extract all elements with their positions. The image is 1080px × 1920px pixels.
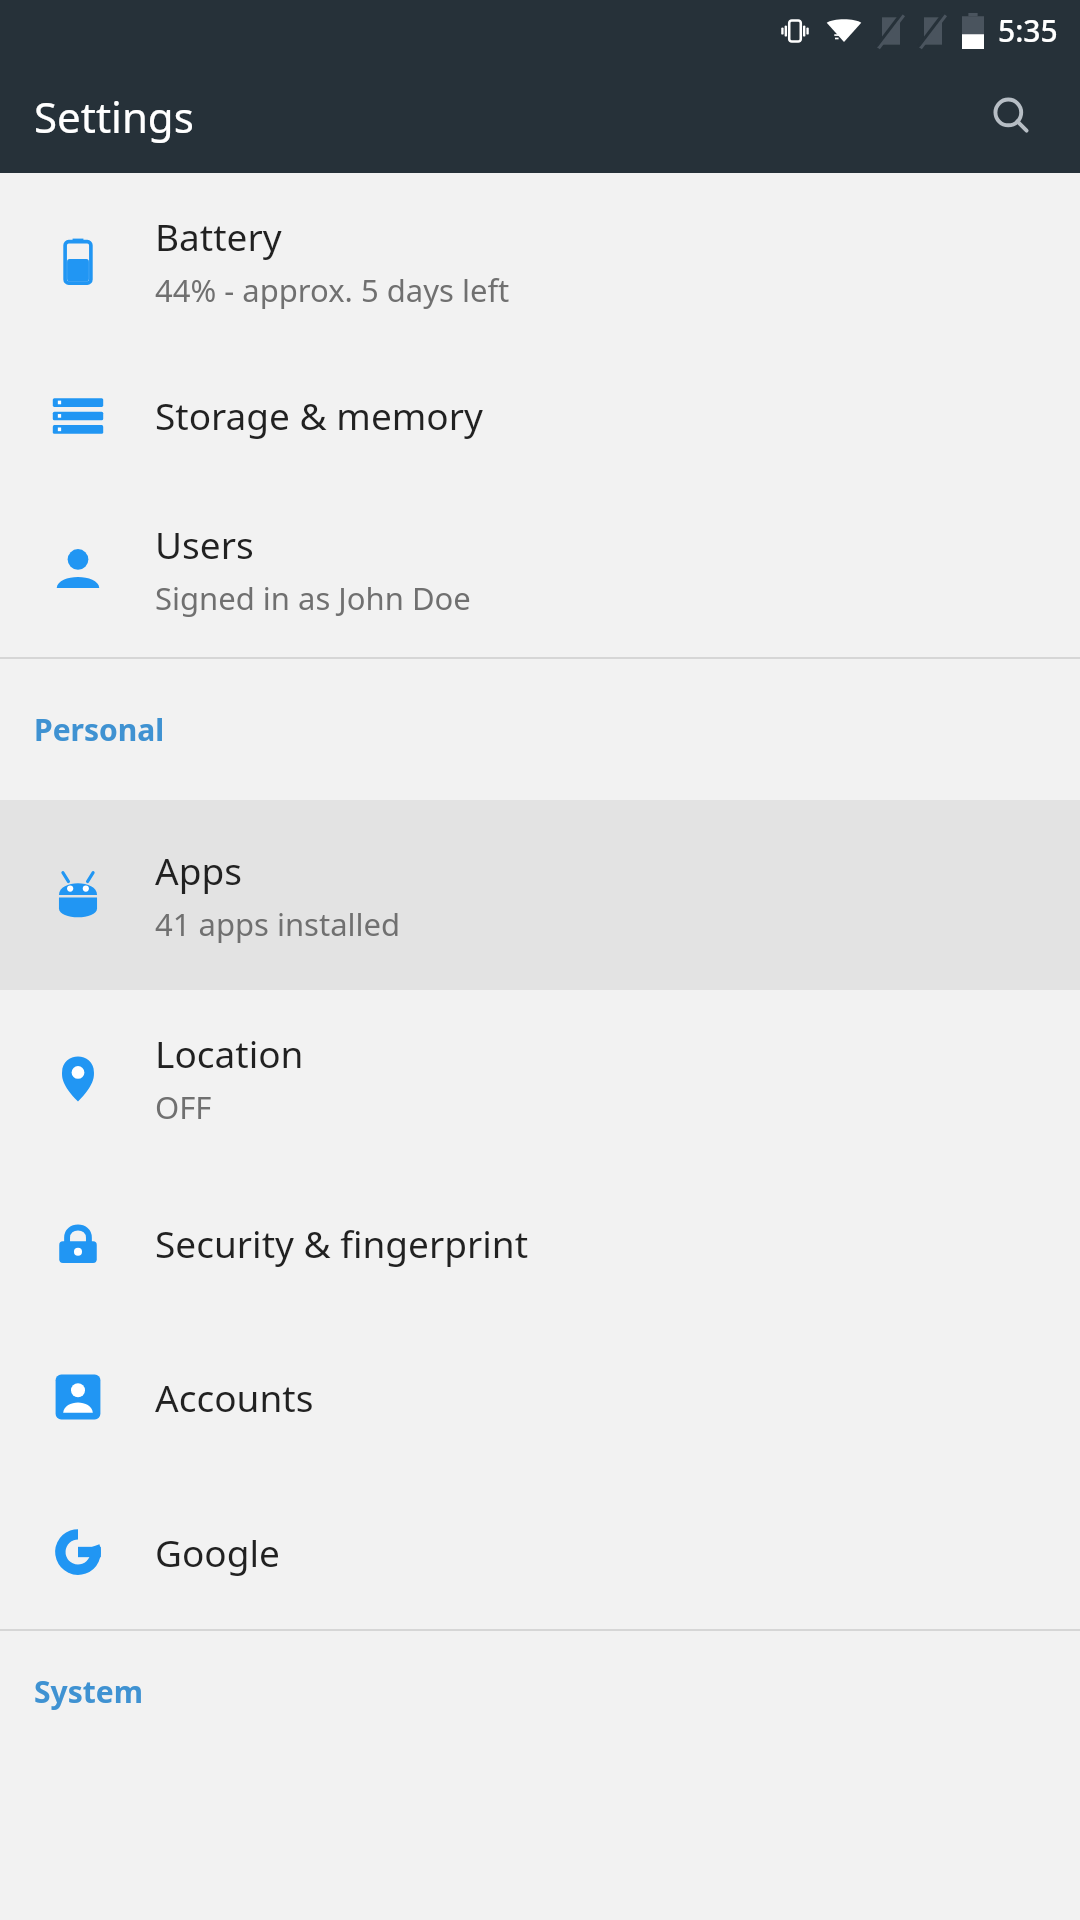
staticText: 44% - approx. 5 days left bbox=[155, 269, 510, 311]
button[interactable]: Users bbox=[0, 480, 1080, 657]
button[interactable]: Accounts bbox=[0, 1320, 1080, 1474]
button[interactable]: Apps bbox=[0, 800, 1080, 990]
button[interactable]: Storage & memory bbox=[0, 349, 1080, 480]
staticText: Google bbox=[155, 1527, 280, 1577]
staticText: Storage & memory bbox=[155, 390, 483, 440]
staticText: Personal bbox=[34, 709, 165, 750]
staticText: Security & fingerprint bbox=[155, 1218, 529, 1268]
staticText: 5:35 bbox=[998, 10, 1058, 51]
staticText: OFF bbox=[155, 1086, 212, 1128]
staticText: Signed in as John Doe bbox=[155, 577, 471, 619]
staticText: Accounts bbox=[155, 1372, 314, 1422]
staticText: Users bbox=[155, 519, 254, 569]
button[interactable]: Security & fingerprint bbox=[0, 1165, 1080, 1320]
staticText: 41 apps installed bbox=[155, 903, 401, 945]
button[interactable]: Search bbox=[968, 73, 1056, 161]
staticText: Location bbox=[155, 1028, 304, 1078]
staticText: Battery bbox=[155, 211, 282, 261]
button[interactable]: Location bbox=[0, 990, 1080, 1165]
button[interactable]: Google bbox=[0, 1474, 1080, 1629]
staticText: Settings bbox=[34, 88, 194, 145]
staticText: System bbox=[34, 1671, 143, 1712]
button[interactable]: Battery bbox=[0, 173, 1080, 349]
staticText: Apps bbox=[155, 845, 242, 895]
